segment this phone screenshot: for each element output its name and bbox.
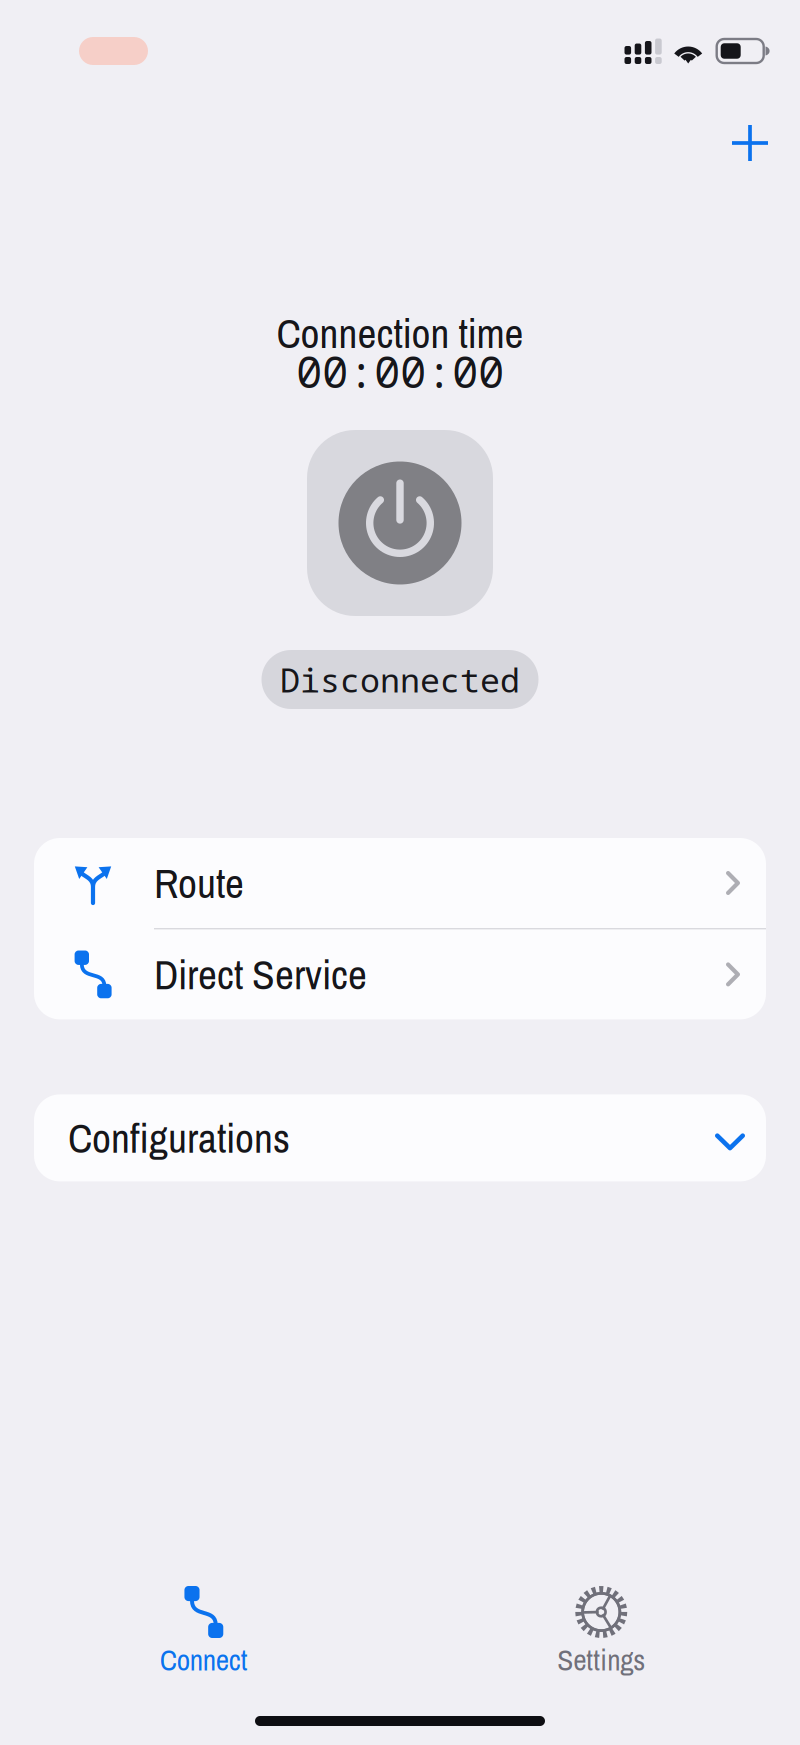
button[interactable]: Power	[307, 430, 493, 616]
staticText: Route	[154, 855, 244, 911]
button[interactable]: Configurations	[34, 1094, 766, 1181]
staticText: Connect	[160, 1640, 248, 1680]
button[interactable]: Route	[34, 838, 766, 928]
staticText: Settings	[557, 1640, 645, 1680]
staticText: Configurations	[68, 1110, 290, 1166]
staticText: Disconnected	[280, 657, 520, 702]
button[interactable]: Connect	[5, 1586, 402, 1672]
button[interactable]: Add	[717, 110, 783, 176]
button[interactable]: Direct Service	[34, 929, 766, 1019]
staticText: 00:00:00	[296, 341, 504, 401]
staticText: Connection time	[276, 305, 523, 361]
button[interactable]: Settings	[402, 1586, 800, 1672]
staticText: Direct Service	[154, 947, 367, 1002]
